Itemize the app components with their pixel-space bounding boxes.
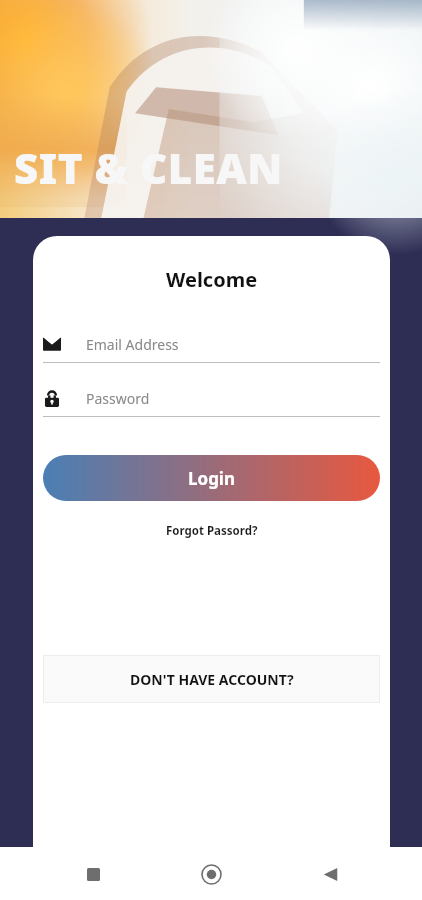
staticText: Email Address [86, 335, 179, 354]
staticText: Login [188, 467, 236, 490]
button[interactable]: Password [43, 383, 380, 417]
button[interactable]: Login [43, 455, 380, 501]
button[interactable]: Email Address [43, 329, 380, 363]
staticText: DON'T HAVE ACCOUNT? [130, 670, 294, 689]
button[interactable]: Recent apps [67, 848, 119, 900]
staticText: Password [86, 389, 150, 408]
button[interactable]: Home [185, 848, 237, 900]
button[interactable]: Forgot Passord? [33, 523, 390, 539]
staticText: Welcome [166, 266, 258, 293]
button[interactable]: DON'T HAVE ACCOUNT? [43, 655, 380, 703]
staticText: Forgot Passord? [166, 523, 258, 539]
staticText: SIT & CLEAN [14, 139, 283, 196]
button[interactable]: Back [304, 848, 356, 900]
